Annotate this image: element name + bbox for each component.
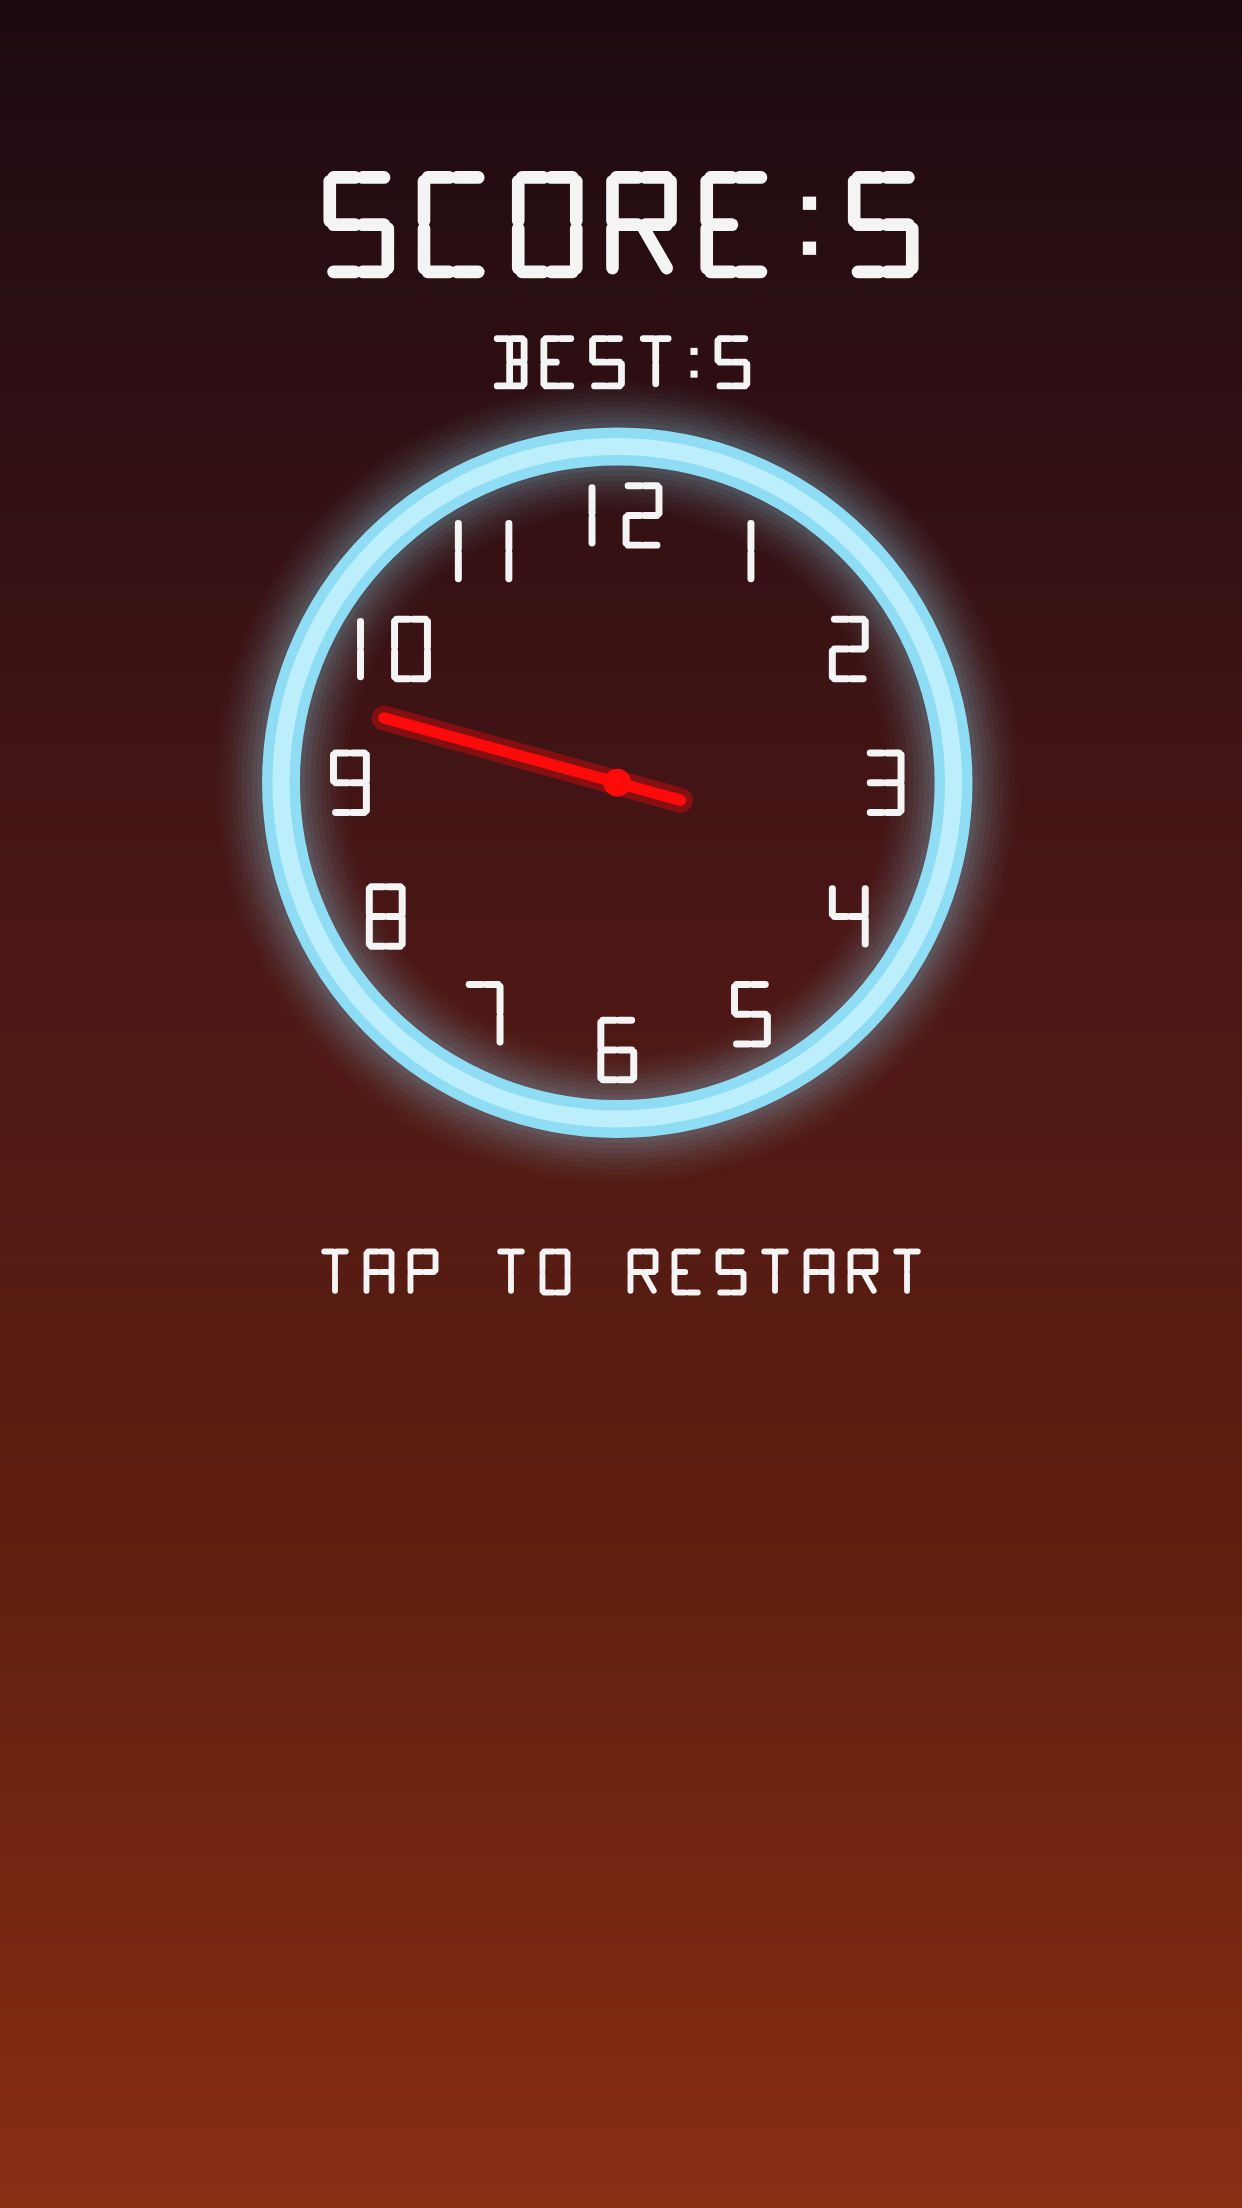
button[interactable]: Tap to restart bbox=[0, 0, 1242, 2208]
